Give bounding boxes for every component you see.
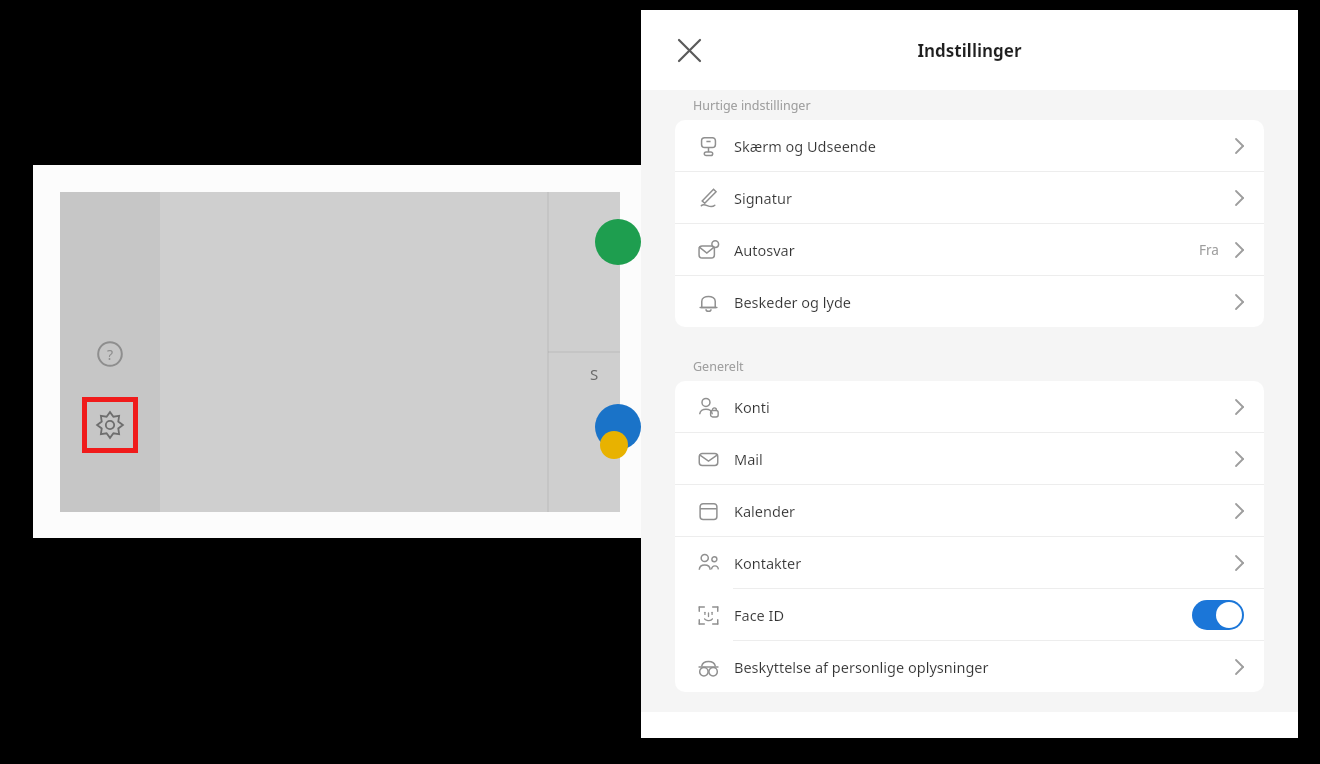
button[interactable]: Kalender xyxy=(675,485,1264,536)
button[interactable]: Autosvar xyxy=(675,224,1264,275)
staticText: Beskeder og lyde xyxy=(734,292,852,312)
staticText: Signatur xyxy=(734,188,792,208)
staticText: Mail xyxy=(734,449,763,469)
staticText: Face ID xyxy=(734,605,785,625)
staticText: Autosvar xyxy=(734,240,795,260)
button[interactable]: Face ID xyxy=(675,589,1264,640)
staticText: Kalender xyxy=(734,501,796,521)
staticText: Beskyttelse af personlige oplysninger xyxy=(734,657,989,677)
button[interactable]: Help xyxy=(88,332,132,376)
button[interactable]: Settings xyxy=(82,397,138,453)
staticText: Kontakter xyxy=(734,553,802,573)
staticText: Fra xyxy=(1199,241,1219,259)
staticText: Generelt xyxy=(693,358,744,375)
button[interactable]: Skærm og Udseende xyxy=(675,120,1264,171)
staticText: Indstillinger xyxy=(917,39,1022,62)
button[interactable]: Kontakter xyxy=(675,537,1264,588)
staticText: Skærm og Udseende xyxy=(734,136,876,156)
staticText: S xyxy=(590,364,599,384)
button[interactable]: Close xyxy=(667,28,711,72)
staticText: Hurtige indstillinger xyxy=(693,97,811,114)
button[interactable]: Mail xyxy=(675,433,1264,484)
button[interactable]: Face ID toggle xyxy=(1192,600,1244,630)
button[interactable]: Konti xyxy=(675,381,1264,432)
button[interactable]: Signatur xyxy=(675,172,1264,223)
button[interactable]: Beskeder og lyde xyxy=(675,276,1264,327)
button[interactable]: Beskyttelse af personlige oplysninger xyxy=(675,641,1264,692)
staticText: ? xyxy=(107,345,114,364)
staticText: Konti xyxy=(734,397,770,417)
